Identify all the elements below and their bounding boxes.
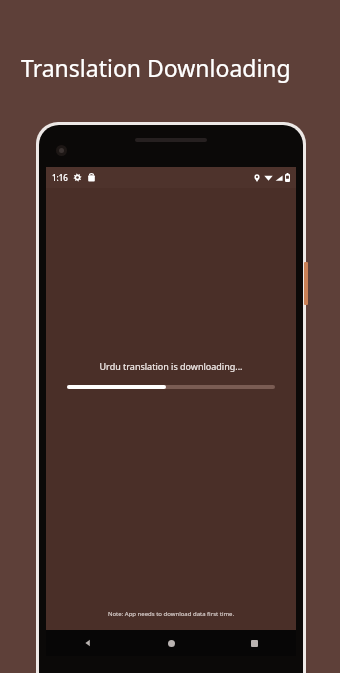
staticText: Translation Downloading [21,52,291,83]
staticText: Note: App needs to download data first t… [46,610,296,618]
button[interactable]: Back [46,630,130,656]
button[interactable]: Recent apps [213,630,296,656]
staticText: Urdu translation is downloading... [46,360,296,372]
button[interactable]: Home [130,630,213,656]
staticText: 1:16 [52,172,68,183]
